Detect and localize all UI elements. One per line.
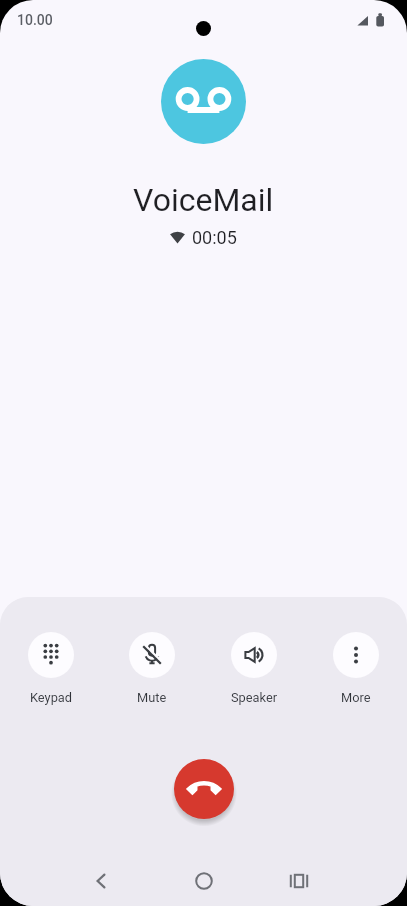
- staticText: 10.00: [17, 12, 53, 28]
- staticText: 00:05: [192, 227, 237, 248]
- button[interactable]: [85, 865, 117, 897]
- button[interactable]: Speaker: [203, 632, 305, 705]
- button[interactable]: Keypad: [0, 632, 101, 705]
- button[interactable]: [283, 865, 315, 897]
- staticText: Speaker: [231, 690, 278, 705]
- staticText: More: [341, 690, 371, 705]
- staticText: VoiceMail: [133, 181, 274, 219]
- button[interactable]: [188, 865, 220, 897]
- button[interactable]: More: [305, 632, 407, 705]
- staticText: Mute: [137, 690, 167, 705]
- button[interactable]: Mute: [101, 632, 203, 705]
- staticText: Keypad: [30, 690, 72, 705]
- button[interactable]: [174, 759, 234, 819]
